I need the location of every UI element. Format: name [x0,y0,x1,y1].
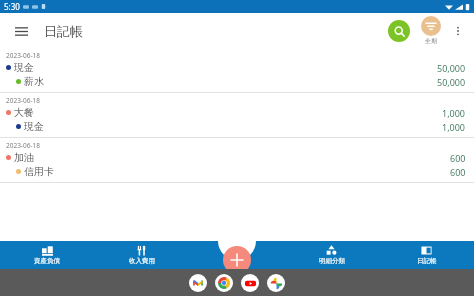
staticText: 信用卡 [24,165,54,178]
button[interactable]: Search [388,20,410,42]
button[interactable]: App shortcut [241,274,259,292]
staticText: 600 [450,166,466,178]
staticText: 1,000 [442,121,466,133]
button[interactable]: 明細分類 [284,241,379,269]
button[interactable]: 收入費用 [94,241,189,269]
button[interactable]: Add entry [223,246,251,274]
staticText: 1,000 [442,107,466,119]
staticText: 大餐 [14,106,34,119]
button[interactable]: Filter period 全期 [418,13,444,48]
staticText: 現金 [14,61,34,74]
staticText: 2023-06-18 [6,96,40,105]
staticText: 現金 [24,120,44,133]
button[interactable]: Open navigation menu [10,20,32,42]
staticText: 5:30 [4,1,20,12]
staticText: 2023-06-18 [6,141,40,150]
button[interactable]: 2023-06-18 [0,48,474,92]
button[interactable]: 資產負債 [0,241,94,269]
staticText: 50,000 [437,62,466,74]
staticText: 加油 [14,151,34,164]
button[interactable]: App shortcut [215,274,233,292]
button[interactable]: App shortcut [267,274,285,292]
staticText: 資產負債 [34,257,60,265]
button[interactable]: 日記帳 [379,241,474,269]
button[interactable]: App shortcut [189,274,207,292]
staticText: 日記帳 [44,23,83,39]
staticText: 2023-06-18 [6,51,40,60]
staticText: 全期 [425,37,437,45]
staticText: 50,000 [437,76,466,88]
staticText: 收入費用 [129,257,155,265]
staticText: 薪水 [24,75,44,88]
staticText: 日記帳 [417,257,437,265]
button[interactable]: More options [448,21,468,41]
staticText: 600 [450,152,466,164]
staticText: 明細分類 [319,257,345,265]
button[interactable]: 2023-06-18 [0,93,474,137]
button[interactable]: 2023-06-18 [0,138,474,182]
